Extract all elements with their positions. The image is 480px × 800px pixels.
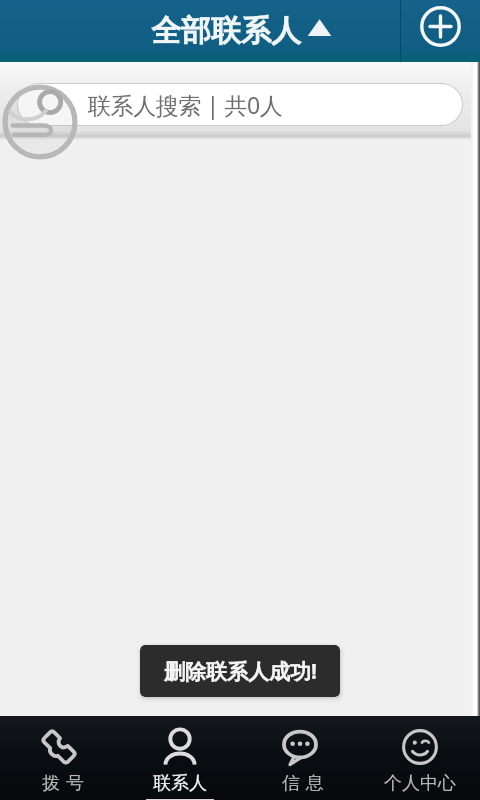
button[interactable]: 个人中心 <box>360 716 480 800</box>
staticText: 联系人搜索 | 共0人 <box>88 89 283 120</box>
staticText: 全部联系人 <box>151 12 301 50</box>
button[interactable]: 联系人 <box>120 716 240 800</box>
staticText: 个人中心 <box>384 772 456 795</box>
staticText: 信息 <box>279 772 327 795</box>
button[interactable]: 拨号 <box>0 716 120 800</box>
button[interactable]: Add contact <box>401 0 480 62</box>
staticText: 拨号 <box>39 772 87 795</box>
button[interactable]: 全部联系人 <box>0 0 400 62</box>
staticText: 联系人 <box>153 772 207 795</box>
button[interactable]: 信息 <box>240 716 360 800</box>
button[interactable]: 联系人搜索 | 共0人 <box>18 84 462 125</box>
staticText: 删除联系人成功! <box>164 657 317 686</box>
